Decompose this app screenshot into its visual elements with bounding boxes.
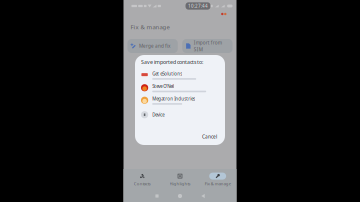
button[interactable]: Import from <box>182 39 232 53</box>
button[interactable]: Cancel <box>199 131 220 142</box>
button[interactable]: Fix & manage <box>199 169 236 190</box>
staticText: Get eSolutions <box>152 71 182 77</box>
staticText: Steve O'Neil <box>152 83 174 89</box>
staticText: Merge and fix <box>139 43 170 49</box>
staticText: Save imported contacts to: <box>141 58 203 66</box>
staticText: Device <box>152 112 164 118</box>
button[interactable]: Contacts <box>123 169 161 190</box>
button[interactable]: Steve O'Neil <box>135 81 225 94</box>
staticText: Cancel <box>202 133 217 140</box>
button[interactable]: Device <box>135 108 225 121</box>
staticText: Megatron Industries <box>152 96 195 102</box>
button[interactable]: Recents <box>145 190 168 202</box>
staticText: Highlights <box>169 181 190 186</box>
button[interactable]: Megatron Industries <box>135 94 225 106</box>
staticText: Import from <box>194 39 222 46</box>
button[interactable]: Highlights <box>161 169 199 190</box>
staticText: Fix & manage <box>130 23 169 31</box>
button[interactable]: Merge and fix <box>127 39 178 53</box>
staticText: Fix & manage <box>205 181 231 186</box>
button[interactable]: Back <box>191 190 214 202</box>
button[interactable]: Get eSolutions <box>135 69 225 81</box>
staticText: Contacts <box>134 181 151 186</box>
staticText: SIM <box>194 46 203 53</box>
button[interactable]: Home <box>168 190 191 202</box>
staticText: 10:27:44 <box>188 3 208 9</box>
